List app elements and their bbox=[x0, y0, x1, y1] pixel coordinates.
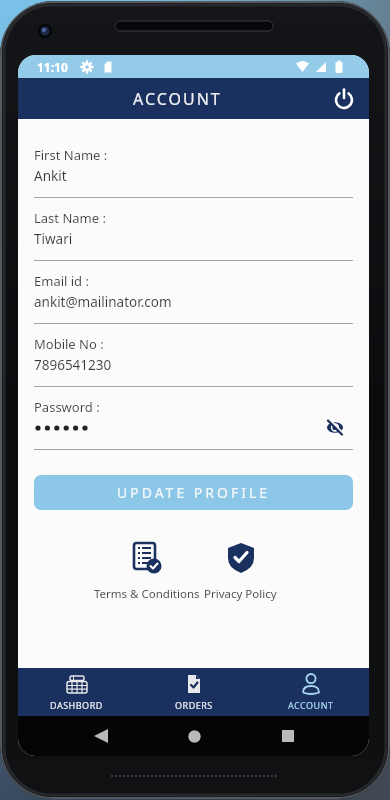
staticText: 7896541230 bbox=[34, 356, 112, 374]
staticText: ACCOUNT bbox=[288, 699, 334, 711]
button[interactable]: DASHBORD bbox=[18, 668, 135, 716]
button[interactable]: Terms & Conditions bbox=[94, 542, 200, 602]
staticText: First Name : bbox=[34, 146, 108, 164]
staticText: 11:10 bbox=[37, 59, 68, 75]
staticText: DASHBORD bbox=[50, 699, 103, 711]
staticText: Last Name : bbox=[34, 209, 106, 227]
staticText: ORDERS bbox=[175, 699, 213, 711]
staticText: ankit@mailinator.com bbox=[34, 293, 172, 311]
button[interactable]: ACCOUNT bbox=[252, 668, 369, 716]
staticText: Ankit bbox=[34, 167, 67, 185]
staticText: Mobile No : bbox=[34, 335, 104, 353]
staticText: UPDATE PROFILE bbox=[117, 483, 271, 502]
button[interactable]: Privacy Policy bbox=[204, 542, 277, 602]
button[interactable] bbox=[332, 87, 356, 111]
staticText: Email id : bbox=[34, 272, 89, 290]
button[interactable] bbox=[94, 729, 108, 743]
staticText: Privacy Policy bbox=[204, 586, 277, 602]
button[interactable] bbox=[188, 730, 201, 743]
staticText: Tiwari bbox=[34, 230, 73, 248]
button[interactable] bbox=[325, 419, 345, 436]
button[interactable]: UPDATE PROFILE bbox=[34, 475, 353, 510]
staticText: Password : bbox=[34, 398, 100, 416]
button[interactable]: ORDERS bbox=[135, 668, 252, 716]
staticText: Terms & Conditions bbox=[94, 586, 200, 602]
staticText: ACCOUNT bbox=[133, 88, 222, 110]
